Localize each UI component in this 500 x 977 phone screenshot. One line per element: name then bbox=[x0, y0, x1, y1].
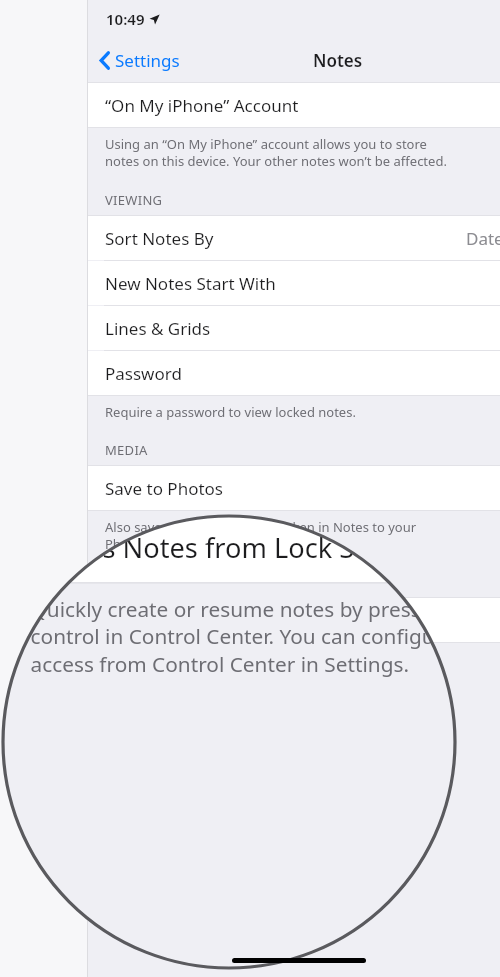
staticText: Lines & Grids bbox=[105, 317, 211, 340]
button[interactable]: Lines & Grids bbox=[3, 44, 500, 115]
staticText: Lines & Grids bbox=[31, 62, 200, 99]
button[interactable]: “On My iPhone” Account bbox=[88, 83, 500, 127]
button[interactable]: Lines & Grids bbox=[88, 306, 500, 350]
staticText: Save to Photos bbox=[31, 318, 219, 355]
staticText: Quickly create or resume notes by pressi… bbox=[105, 650, 432, 702]
button[interactable]: Password bbox=[3, 116, 500, 187]
staticText: Save to Photos bbox=[105, 477, 223, 500]
button[interactable]: New Notes Start With bbox=[3, 0, 500, 43]
staticText: 10:49 bbox=[106, 9, 145, 29]
staticText: LOCK SCREEN & CONTROL CENTER bbox=[105, 573, 326, 591]
staticText: Access Notes from Lock Screen bbox=[105, 609, 352, 632]
staticText: Using an “On My iPhone” account allows y… bbox=[105, 135, 447, 170]
staticText: Date Edited bbox=[466, 227, 500, 250]
staticText: Notes bbox=[313, 49, 363, 72]
staticText: Password bbox=[31, 134, 154, 171]
button[interactable]: Access Notes from Lock Screen bbox=[88, 598, 500, 642]
staticText: Settings bbox=[115, 49, 180, 72]
staticText: New Notes Start With bbox=[31, 0, 304, 27]
staticText: Also save photos and videos taken in Not… bbox=[105, 518, 417, 553]
staticText: MEDIA bbox=[105, 441, 148, 459]
staticText: Access Notes from Lock Screen bbox=[31, 529, 426, 566]
staticText: VIEWING bbox=[105, 191, 163, 209]
button[interactable]: New Notes Start With bbox=[88, 261, 500, 305]
button[interactable]: Save to Photos bbox=[88, 466, 500, 510]
button[interactable]: Settings bbox=[88, 43, 190, 78]
staticText: “On My iPhone” Account bbox=[105, 94, 299, 117]
staticText: Require a password to view locked notes. bbox=[31, 200, 432, 228]
staticText: Also save photos and videos taken in Not… bbox=[31, 384, 500, 440]
staticText: Password bbox=[105, 362, 182, 385]
staticText: Require a password to view locked notes. bbox=[105, 403, 356, 421]
staticText: Quickly create or resume notes by pressi… bbox=[31, 595, 500, 678]
button[interactable]: Sort Notes By bbox=[88, 216, 500, 260]
staticText: LOCK SCREEN & CONTROL CENTER bbox=[31, 472, 384, 500]
button[interactable]: Access Notes from Lock Screen bbox=[3, 512, 500, 582]
staticText: Sort Notes By bbox=[105, 227, 214, 250]
staticText: MEDIA bbox=[31, 260, 99, 289]
staticText: New Notes Start With bbox=[105, 272, 276, 295]
button[interactable]: Password bbox=[88, 351, 500, 395]
button[interactable]: Save to Photos bbox=[3, 300, 500, 371]
